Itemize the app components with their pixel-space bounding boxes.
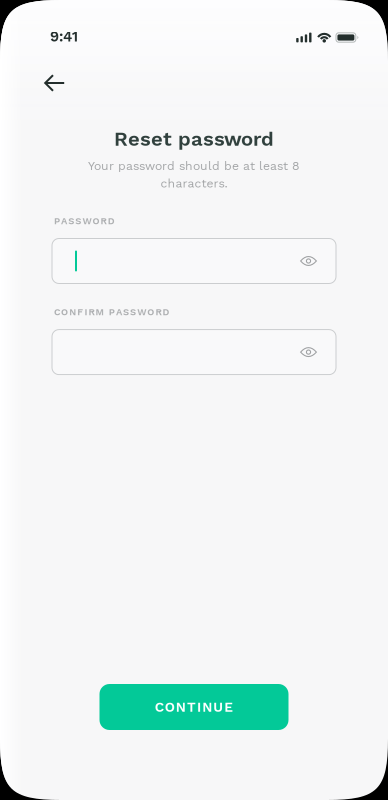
button[interactable]: CONTINUE: [99, 684, 288, 730]
staticText: PASSWORD: [54, 215, 115, 226]
button[interactable]: Show password: [288, 239, 336, 282]
staticText: CONTINUE: [155, 699, 233, 715]
staticText: Reset password: [114, 127, 274, 151]
button[interactable]: Back: [0, 63, 81, 103]
staticText: CONFIRM PASSWORD: [54, 306, 169, 318]
button[interactable]: Show password: [288, 331, 336, 374]
staticText: 9:41: [50, 28, 78, 45]
staticText: Your password should be at least 8: [88, 159, 300, 173]
staticText: characters.: [160, 176, 227, 190]
